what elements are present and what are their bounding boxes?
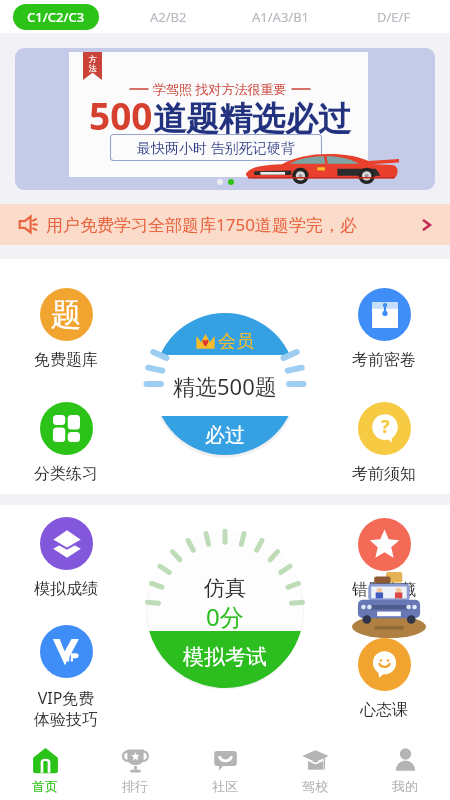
staticText: 方 法 bbox=[83, 54, 102, 73]
staticText: 道题精选必过 bbox=[153, 98, 351, 140]
button[interactable]: 题 bbox=[24, 288, 108, 370]
staticText: 社区 bbox=[212, 778, 238, 794]
button[interactable]: 会员 bbox=[153, 312, 297, 456]
staticText: 心态课 bbox=[360, 700, 408, 720]
staticText: 驾校 bbox=[302, 778, 328, 794]
staticText: 考前密卷 bbox=[352, 350, 416, 370]
button[interactable]: D/E/F bbox=[365, 3, 423, 31]
button[interactable]: ? bbox=[342, 402, 426, 484]
staticText: 用户免费学习全部题库1750道题学完，必 bbox=[46, 213, 419, 236]
button[interactable]: 仿真 bbox=[146, 530, 304, 688]
button[interactable]: A2/B2 bbox=[138, 3, 199, 31]
staticText: 模拟考试 bbox=[183, 644, 267, 670]
staticText: 模拟成绩 bbox=[34, 579, 98, 599]
staticText: 错题收藏 bbox=[352, 580, 416, 600]
button[interactable]: 模拟成绩 bbox=[24, 517, 108, 599]
staticText: D/E/F bbox=[377, 8, 411, 26]
staticText: VIP免费 体验技巧 bbox=[34, 687, 98, 729]
button[interactable]: 排行 bbox=[90, 740, 180, 800]
staticText: 500 bbox=[89, 90, 153, 140]
button[interactable]: 考前密卷 bbox=[342, 288, 426, 370]
staticText: 精选500题 bbox=[173, 371, 277, 401]
button[interactable]: Driving school ad bbox=[352, 572, 426, 638]
button[interactable]: 用户免费学习全部题库1750道题学完，必 bbox=[0, 204, 450, 245]
staticText: 考前须知 bbox=[352, 464, 416, 484]
button[interactable]: VIP免费 体验技巧 bbox=[24, 625, 108, 729]
button[interactable]: 分类练习 bbox=[24, 402, 108, 484]
staticText: ? bbox=[381, 414, 390, 439]
staticText: 首页 bbox=[32, 778, 58, 794]
button[interactable]: 驾校 bbox=[270, 740, 360, 800]
staticText: 排行 bbox=[122, 778, 148, 794]
button[interactable]: 心态课 bbox=[342, 638, 426, 720]
button[interactable]: 方 法 bbox=[15, 48, 435, 190]
staticText: C1/C2/C3 bbox=[27, 8, 85, 26]
staticText: 我的 bbox=[392, 778, 418, 794]
staticText: A2/B2 bbox=[150, 8, 187, 26]
staticText: 仿真 bbox=[204, 575, 246, 601]
staticText: 会员 bbox=[218, 330, 254, 353]
button[interactable]: 社区 bbox=[180, 740, 270, 800]
button[interactable]: A1/A3/B1 bbox=[240, 3, 322, 31]
button[interactable]: 首页 bbox=[0, 740, 90, 800]
button[interactable]: C1/C2/C3 bbox=[13, 4, 99, 30]
staticText: 学驾照 找对方法很重要 bbox=[153, 80, 287, 98]
staticText: A1/A3/B1 bbox=[252, 8, 310, 26]
staticText: 必过 bbox=[205, 423, 245, 448]
button[interactable]: 我的 bbox=[360, 740, 450, 800]
button[interactable]: 错题收藏 bbox=[342, 518, 426, 600]
staticText: 题 bbox=[51, 295, 82, 334]
staticText: 分类练习 bbox=[34, 464, 98, 484]
staticText: 免费题库 bbox=[34, 350, 98, 370]
staticText: 最快两小时 告别死记硬背 bbox=[137, 138, 295, 157]
staticText: 0分 bbox=[206, 600, 244, 633]
